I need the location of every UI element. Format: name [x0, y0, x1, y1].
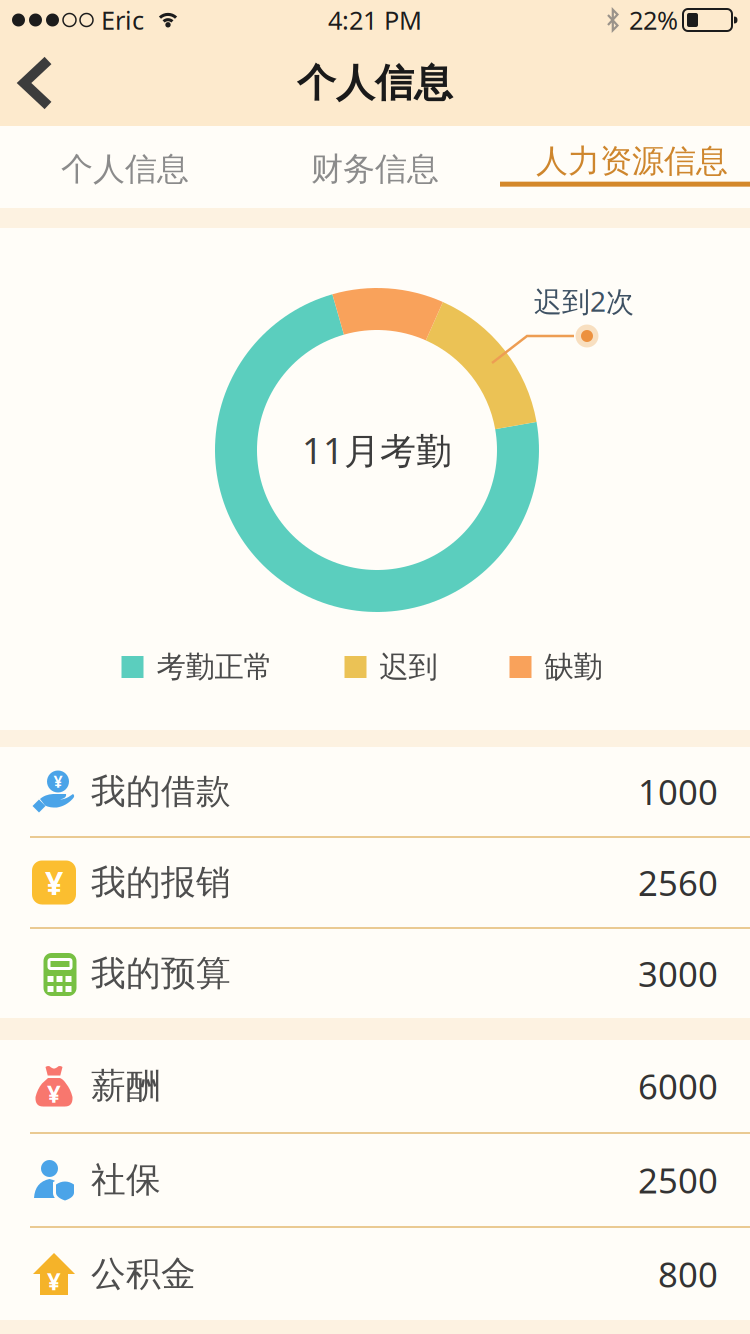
button[interactable]: ¥ [0, 1228, 750, 1320]
staticText: 个人信息 [297, 59, 453, 107]
staticText: 我的报销 [91, 861, 231, 904]
staticText: ¥ [53, 771, 62, 792]
staticText: 迟到 [379, 649, 437, 685]
staticText: 11月考勤 [302, 426, 452, 474]
staticText: Eric [101, 3, 144, 37]
button[interactable]: ¥ [0, 747, 750, 836]
staticText: ¥ [47, 1078, 61, 1109]
staticText: 薪酬 [91, 1065, 161, 1107]
staticText: 个人信息 [61, 149, 189, 189]
staticText: 财务信息 [311, 149, 439, 189]
staticText: 迟到2次 [534, 282, 634, 320]
staticText: 3000 [638, 950, 718, 996]
staticText: 人力资源信息 [536, 141, 728, 181]
staticText: 1000 [638, 768, 718, 814]
staticText: ¥ [47, 1265, 61, 1297]
staticText: 800 [658, 1251, 718, 1297]
staticText: 22% [629, 3, 678, 37]
button[interactable]: ¥ [0, 838, 750, 927]
staticText: 社保 [91, 1159, 161, 1201]
button[interactable]: 社保 [0, 1134, 750, 1226]
staticText: 我的预算 [91, 952, 231, 995]
button[interactable]: 我的预算 [0, 929, 750, 1018]
button[interactable]: 人力资源信息 [500, 126, 750, 208]
staticText: ¥ [45, 861, 63, 904]
button[interactable]: Back [0, 51, 60, 114]
staticText: 2500 [638, 1157, 718, 1203]
button[interactable]: 个人信息 [0, 126, 250, 208]
staticText: 公积金 [91, 1253, 196, 1295]
staticText: 4:21 PM [328, 3, 422, 37]
staticText: 考勤正常 [156, 649, 272, 685]
button[interactable]: ¥ [0, 1040, 750, 1132]
staticText: 我的借款 [91, 770, 231, 813]
staticText: 2560 [638, 859, 718, 905]
button[interactable]: 财务信息 [250, 126, 500, 208]
staticText: 缺勤 [544, 649, 602, 685]
staticText: 6000 [638, 1063, 718, 1109]
